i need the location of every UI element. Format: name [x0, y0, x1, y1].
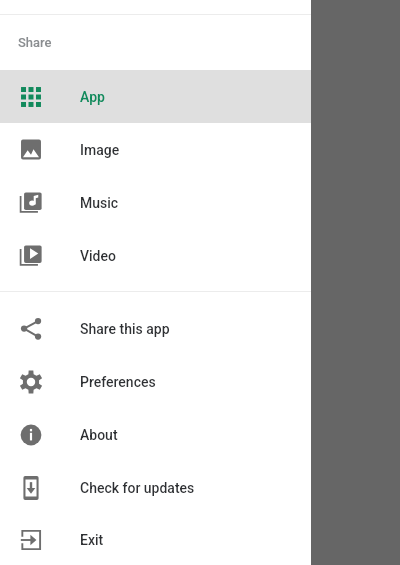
button[interactable]: Music: [0, 176, 311, 229]
button[interactable]: Exit: [0, 514, 311, 565]
button[interactable]: Image: [0, 123, 311, 176]
button[interactable]: Preferences: [0, 355, 311, 408]
staticText: Image: [80, 142, 120, 158]
button[interactable]: About: [0, 408, 311, 461]
staticText: Check for updates: [80, 480, 195, 496]
button[interactable]: App: [0, 70, 311, 123]
button[interactable]: Share this app: [0, 302, 311, 355]
button[interactable]: Check for updates: [0, 461, 311, 514]
staticText: Exit: [80, 532, 104, 548]
staticText: Preferences: [80, 374, 156, 390]
staticText: Video: [80, 248, 116, 264]
staticText: About: [80, 427, 118, 443]
staticText: Share: [18, 35, 52, 50]
button[interactable]: Video: [0, 229, 311, 282]
staticText: Share this app: [80, 321, 170, 337]
staticText: Music: [80, 195, 119, 211]
staticText: App: [80, 89, 105, 105]
